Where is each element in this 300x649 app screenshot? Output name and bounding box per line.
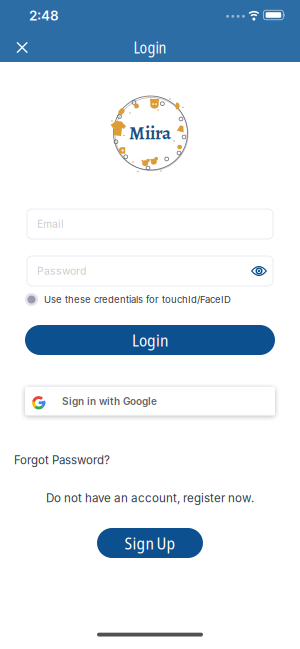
button[interactable]: Use these credentials for touchId/FaceID bbox=[0, 293, 300, 306]
staticText: Sign in with Google bbox=[62, 395, 157, 407]
staticText: Login bbox=[132, 329, 168, 351]
staticText: 2:48 bbox=[29, 7, 59, 24]
button[interactable]: Login bbox=[25, 325, 275, 355]
staticText: Forgot Password? bbox=[14, 453, 110, 467]
staticText: Do not have an account, register now. bbox=[46, 491, 254, 505]
staticText: Miira bbox=[129, 120, 171, 146]
staticText: Password bbox=[37, 265, 86, 277]
staticText: Sign Up bbox=[124, 532, 175, 554]
button[interactable]: Show password bbox=[251, 265, 273, 276]
button[interactable]: Sign Up bbox=[97, 528, 203, 558]
button[interactable]: Close bbox=[0, 33, 28, 59]
button[interactable]: Forgot Password? bbox=[0, 453, 300, 467]
staticText: Use these credentials for touchId/FaceID bbox=[44, 294, 231, 305]
staticText: Login bbox=[133, 37, 166, 58]
staticText: Email bbox=[37, 218, 64, 230]
button[interactable]: Sign in with Google bbox=[25, 387, 275, 415]
